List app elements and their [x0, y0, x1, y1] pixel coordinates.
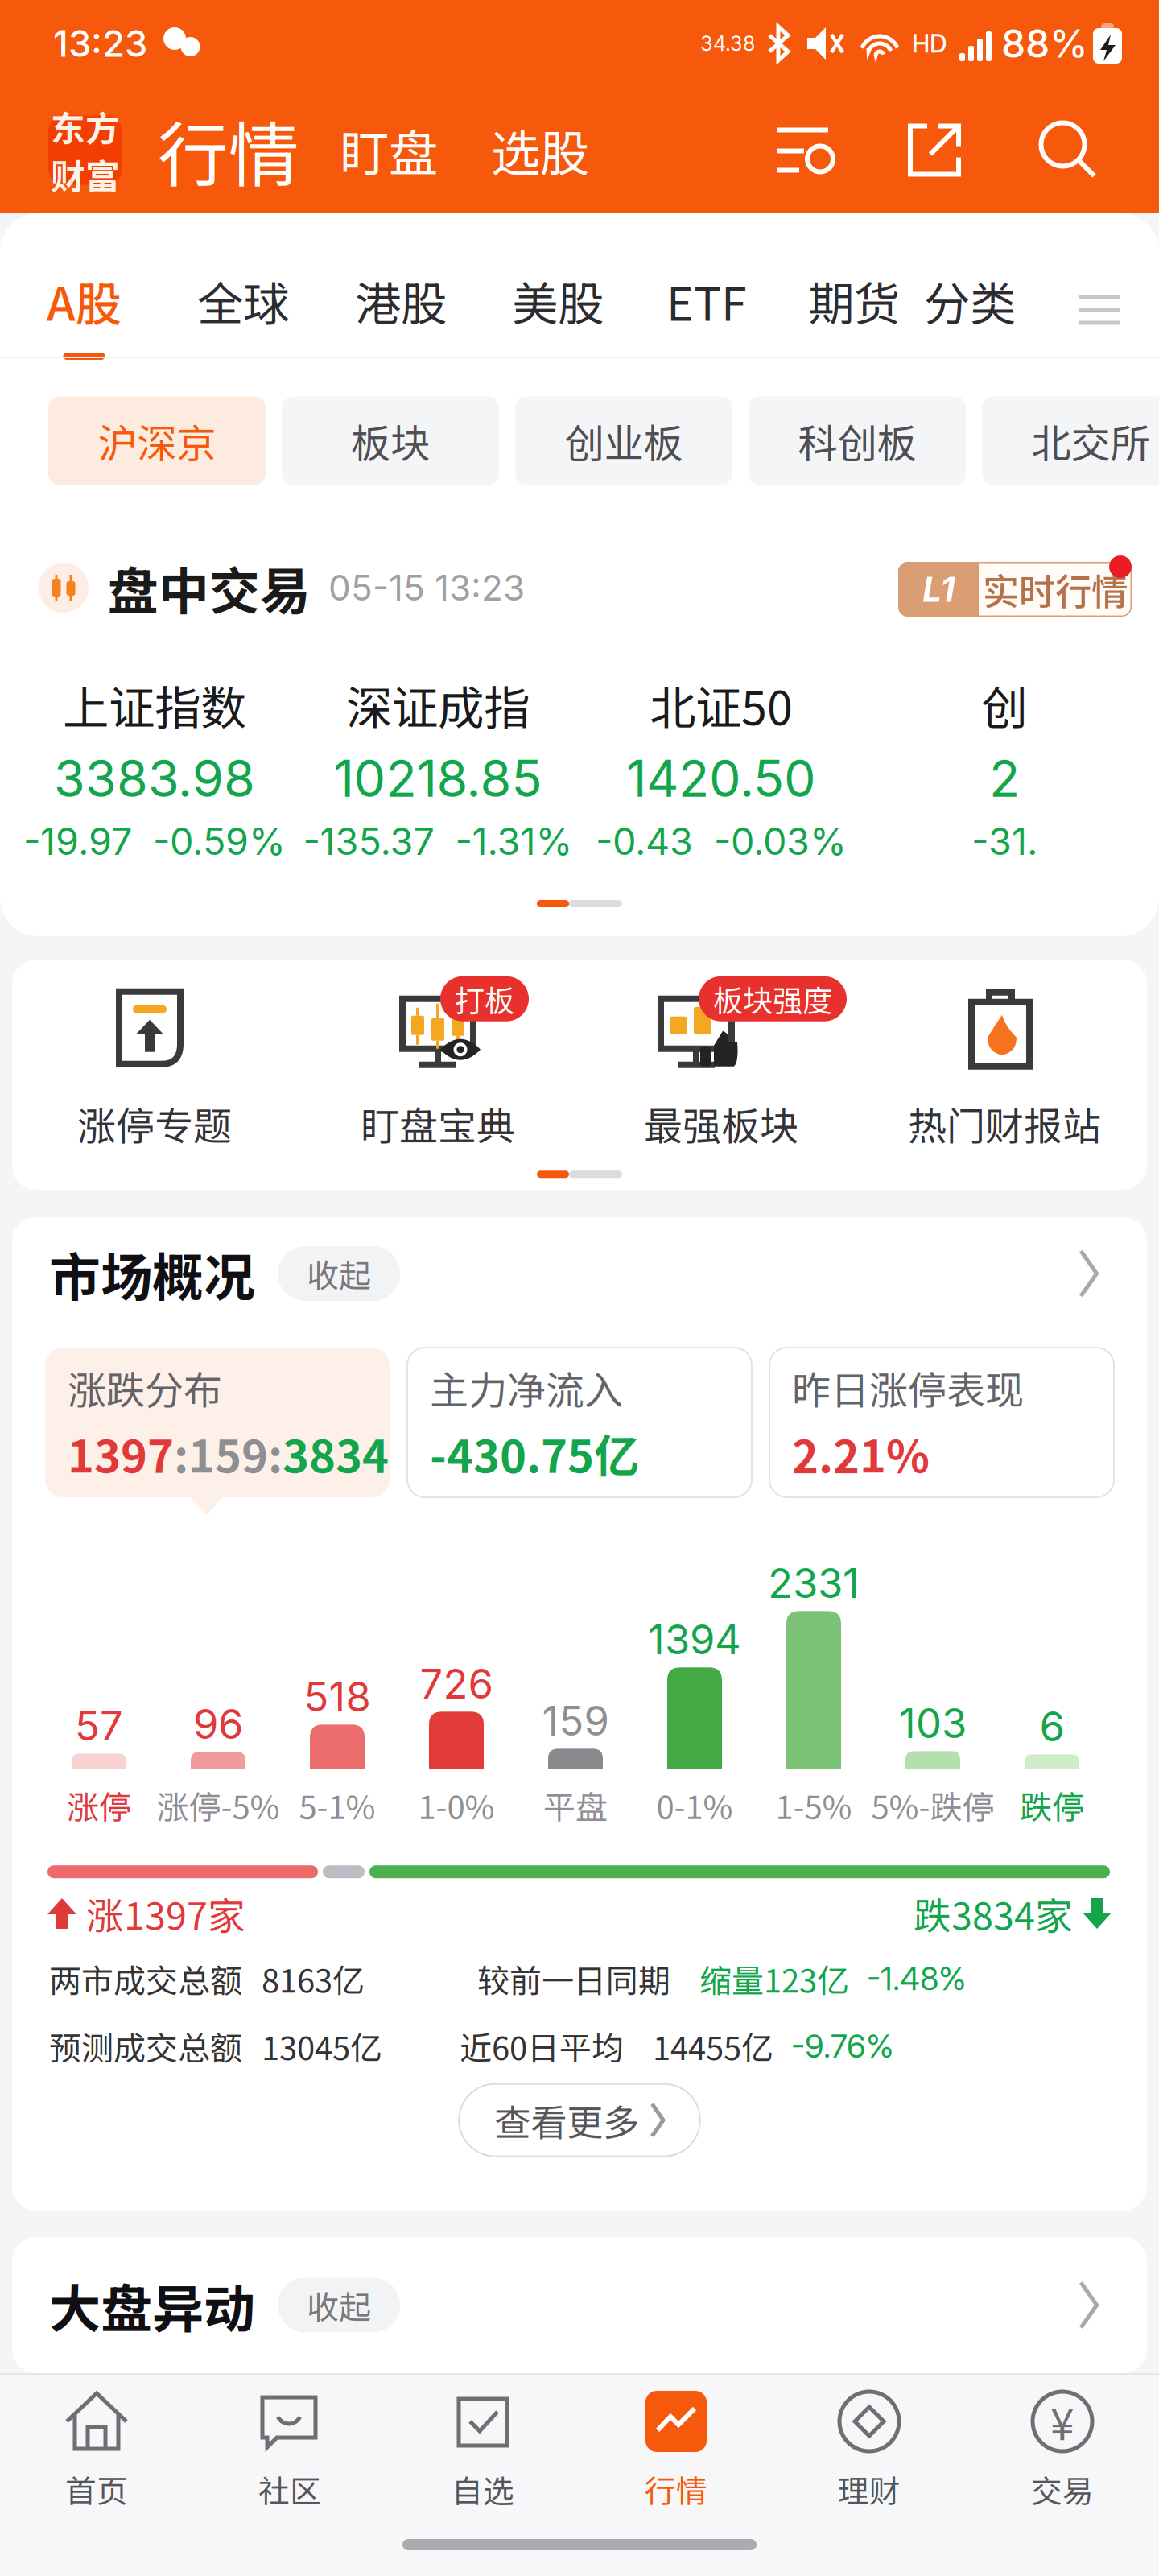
button[interactable]: 北证50	[579, 671, 863, 864]
staticText: A股	[47, 267, 122, 334]
staticText: 1-0%	[418, 1782, 495, 1828]
staticText: :	[268, 1420, 283, 1485]
staticText: 10218.85	[334, 748, 542, 809]
staticText: 科创板	[798, 412, 916, 469]
button[interactable]: 更多分类	[1075, 291, 1124, 357]
staticText: 34.38	[700, 31, 755, 56]
staticText: :	[174, 1420, 188, 1485]
button[interactable]: 自选	[386, 2375, 579, 2513]
staticText: 市场概况	[49, 1236, 255, 1311]
staticText: 期货	[808, 267, 900, 334]
button[interactable]: 收起	[278, 1246, 400, 1301]
staticText: 打板	[455, 977, 514, 1021]
button[interactable]: 收起	[278, 2278, 400, 2332]
staticText: -430.75亿	[430, 1420, 639, 1485]
staticText: 较前一日同期	[477, 1955, 670, 2002]
staticText: 518	[304, 1672, 371, 1721]
button[interactable]: 搜索	[1035, 120, 1102, 181]
staticText: 13045亿	[262, 2023, 382, 2069]
staticText: 美股	[512, 267, 604, 334]
button[interactable]: A股	[47, 213, 122, 357]
staticText: 跌3834家	[914, 1886, 1073, 1941]
staticText: 盯盘	[340, 114, 438, 186]
staticText: 大盘异动	[49, 2268, 255, 2342]
staticText: 查看更多	[494, 2094, 639, 2146]
button[interactable]: 期货	[808, 213, 900, 357]
staticText: 收起	[307, 1250, 371, 1297]
staticText: ETF	[666, 267, 747, 334]
staticText: 13:23	[53, 21, 147, 66]
button[interactable]: 北交所	[982, 396, 1159, 485]
button[interactable]: 创业板	[515, 396, 732, 485]
staticText: -135.37	[303, 819, 434, 864]
button[interactable]: 美股	[512, 213, 604, 357]
button[interactable]: 上证指数	[13, 671, 296, 864]
staticText: 159	[188, 1420, 268, 1485]
staticText: 14455亿	[653, 2023, 773, 2069]
staticText: 预测成交总额	[49, 2023, 242, 2069]
button[interactable]: 查看更多	[459, 2084, 700, 2156]
staticText: 理财	[838, 2467, 901, 2512]
staticText: 涨1397家	[86, 1886, 245, 1941]
staticText: -1.48%	[867, 1959, 966, 1998]
button[interactable]: 首页	[0, 2375, 193, 2513]
staticText: 最强板块	[644, 1095, 798, 1151]
staticText: 全球	[197, 267, 289, 334]
staticText: 1397	[68, 1420, 174, 1485]
button[interactable]: 科创板	[749, 396, 966, 485]
staticText: 近60日平均	[460, 2023, 624, 2069]
staticText: 6	[1039, 1702, 1064, 1751]
staticText: 板块强度	[713, 977, 832, 1021]
button[interactable]: ETF	[666, 213, 747, 357]
staticText: HD	[912, 28, 947, 58]
staticText: 涨停	[67, 1782, 131, 1828]
staticText: -0.59%	[153, 819, 286, 864]
button[interactable]: ¥	[966, 2375, 1159, 2513]
staticText: 创	[982, 671, 1027, 738]
staticText: 财富	[51, 149, 120, 199]
staticText: 上证指数	[63, 671, 246, 738]
staticText: 3834	[283, 1420, 389, 1485]
staticText: L1	[922, 568, 955, 610]
button[interactable]: 分类	[924, 213, 1016, 357]
button[interactable]: 社区	[193, 2375, 386, 2513]
staticText: 两市成交总额	[49, 1955, 242, 2002]
button[interactable]: 深证成指	[296, 671, 579, 864]
staticText: 热门财报站	[908, 1095, 1101, 1151]
staticText: 涨停-5%	[157, 1782, 280, 1828]
staticText: 57	[75, 1701, 123, 1750]
button[interactable]: 板块强度	[579, 976, 863, 1151]
staticText: 自选	[452, 2467, 514, 2512]
button[interactable]: 分享	[905, 121, 963, 179]
button[interactable]: 沪深京	[48, 396, 266, 485]
staticText: 板块	[351, 412, 430, 469]
staticText: 96	[193, 1699, 243, 1749]
button[interactable]: 打板	[296, 976, 579, 1151]
staticText: -1.31%	[455, 819, 573, 864]
staticText: 交易	[1031, 2467, 1094, 2512]
button[interactable]: 创	[863, 671, 1146, 864]
staticText: 主力净流入	[430, 1359, 623, 1415]
button[interactable]: 热门财报站	[863, 976, 1146, 1151]
staticText: 5%-跌停	[871, 1782, 994, 1828]
button[interactable]: 盯盘	[333, 105, 444, 196]
button[interactable]: 涨停专题	[13, 976, 296, 1151]
staticText: 2331	[768, 1558, 860, 1608]
staticText: 5-1%	[299, 1782, 375, 1828]
staticText: 平盘	[543, 1782, 608, 1828]
button[interactable]: 港股	[355, 213, 447, 357]
button[interactable]: 选股	[485, 105, 596, 196]
button[interactable]: 更多	[1063, 2279, 1115, 2331]
button[interactable]: 理财	[773, 2375, 966, 2513]
button[interactable]: 板块	[282, 396, 499, 485]
button[interactable]: 设置	[773, 120, 836, 180]
button[interactable]: 全球	[197, 213, 289, 357]
staticText: 103	[899, 1699, 967, 1748]
staticText: 东方	[51, 101, 120, 151]
staticText: 726	[420, 1659, 493, 1708]
button[interactable]: 行情	[579, 2375, 773, 2513]
staticText: 1394	[648, 1615, 741, 1664]
staticText: -0.03%	[714, 819, 847, 864]
staticText: 首页	[65, 2467, 128, 2512]
button[interactable]: 更多	[1063, 1248, 1115, 1299]
